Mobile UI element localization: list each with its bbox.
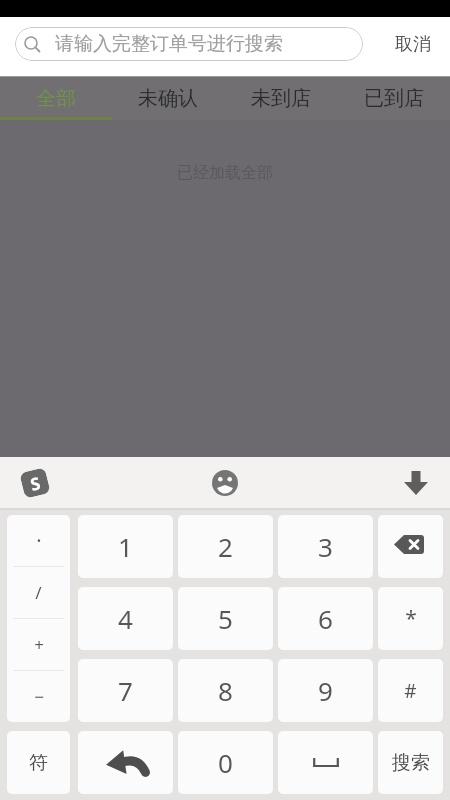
staticText: 7 xyxy=(118,673,133,708)
button[interactable]: 请输入完整订单号进行搜索 xyxy=(15,27,363,61)
staticText: # xyxy=(404,678,417,704)
button[interactable]: * xyxy=(378,587,443,650)
staticText: 0 xyxy=(218,745,233,780)
staticText: 搜索 xyxy=(392,751,430,775)
button[interactable]: 4 xyxy=(78,587,173,650)
button[interactable]: 未确认 xyxy=(112,77,224,120)
staticText: 2 xyxy=(218,529,233,564)
button[interactable]: 3 xyxy=(278,515,373,578)
button[interactable]: − xyxy=(7,671,70,722)
button[interactable]: 7 xyxy=(78,659,173,722)
staticText: 已经加载全部 xyxy=(177,163,273,183)
button[interactable] xyxy=(211,469,239,497)
button[interactable]: 6 xyxy=(278,587,373,650)
staticText: S xyxy=(27,471,43,496)
staticText: 8 xyxy=(218,673,233,708)
button[interactable]: 2 xyxy=(178,515,273,578)
button[interactable]: 0 xyxy=(178,731,273,794)
button[interactable]: 未到店 xyxy=(224,77,337,120)
staticText: + xyxy=(34,633,44,656)
staticText: 未到店 xyxy=(251,86,311,111)
button[interactable] xyxy=(78,731,173,794)
button[interactable]: # xyxy=(378,659,443,722)
staticText: 9 xyxy=(318,673,333,708)
button[interactable] xyxy=(378,515,443,578)
staticText: · xyxy=(36,527,42,554)
button[interactable]: 全部 xyxy=(0,77,112,120)
staticText: 符 xyxy=(29,751,48,775)
staticText: 5 xyxy=(218,601,233,636)
staticText: − xyxy=(34,685,44,708)
staticText: 4 xyxy=(118,601,133,636)
button[interactable]: 8 xyxy=(178,659,273,722)
staticText: 未确认 xyxy=(138,86,198,111)
staticText: 已到店 xyxy=(364,86,424,111)
button[interactable]: 取消 xyxy=(363,33,450,56)
staticText: 1 xyxy=(118,529,133,564)
button[interactable]: S xyxy=(19,467,51,499)
staticText: 全部 xyxy=(36,86,76,111)
button[interactable]: 已到店 xyxy=(337,77,450,120)
button[interactable]: / xyxy=(7,567,70,618)
button[interactable]: + xyxy=(7,619,70,670)
button[interactable]: 符 xyxy=(7,731,70,794)
staticText: 请输入完整订单号进行搜索 xyxy=(55,32,283,56)
staticText: * xyxy=(405,604,417,633)
staticText: 6 xyxy=(318,601,333,636)
button[interactable]: · xyxy=(7,515,70,566)
staticText: 3 xyxy=(318,529,333,564)
button[interactable]: 1 xyxy=(78,515,173,578)
button[interactable] xyxy=(278,731,373,794)
button[interactable]: 搜索 xyxy=(378,731,443,794)
button[interactable]: 5 xyxy=(178,587,273,650)
staticText: / xyxy=(35,581,42,604)
staticText: 取消 xyxy=(395,33,431,56)
button[interactable] xyxy=(403,470,429,496)
button[interactable]: 9 xyxy=(278,659,373,722)
